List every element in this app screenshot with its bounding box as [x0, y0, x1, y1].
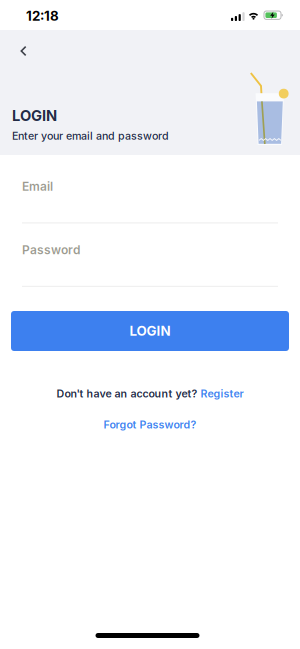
staticText: Password [22, 243, 80, 257]
button[interactable]: Forgot Password? [0, 416, 300, 432]
staticText: 12:18 [26, 8, 59, 24]
staticText: LOGIN [12, 107, 57, 124]
button[interactable]: Register [200, 387, 243, 400]
textField[interactable]: Email [22, 179, 278, 193]
staticText: Forgot Password? [103, 418, 196, 431]
staticText: Don't have an account yet? [56, 387, 197, 400]
staticText: Enter your email and password [12, 129, 169, 142]
button[interactable]: LOGIN [11, 311, 289, 351]
staticText: Email [22, 179, 53, 193]
staticText: LOGIN [129, 323, 170, 339]
button[interactable]: Back [11, 37, 39, 65]
staticText: Register [200, 387, 243, 400]
secureTextField[interactable]: Password [22, 243, 278, 257]
